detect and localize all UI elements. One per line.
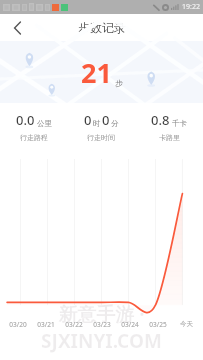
staticText: 03/20 xyxy=(9,320,27,329)
staticText: 03/22 xyxy=(65,320,83,329)
staticText: 0.8 xyxy=(151,111,170,129)
staticText: 新意手游 · SJXINYI.COM xyxy=(0,301,203,354)
staticText: 公里 xyxy=(37,119,52,128)
staticText: 0 xyxy=(102,111,110,129)
staticText: 19:22 xyxy=(182,2,200,12)
staticText: 03/23 xyxy=(93,320,111,329)
button[interactable]: 0 xyxy=(67,111,135,142)
button[interactable]: Back xyxy=(0,14,34,41)
staticText: 步数记录 xyxy=(78,20,126,35)
staticText: 卡路里 xyxy=(159,133,180,142)
staticText: 0.0 xyxy=(16,111,35,129)
button[interactable]: 0.8 xyxy=(135,111,203,142)
staticText: 千卡 xyxy=(172,119,187,128)
button[interactable]: 0.0 xyxy=(0,111,67,142)
staticText: 03/24 xyxy=(121,320,139,329)
staticText: 03/25 xyxy=(149,320,167,329)
staticText: 03/21 xyxy=(37,320,55,329)
staticText: 步 xyxy=(115,78,123,88)
staticText: 行走时间 xyxy=(87,133,115,142)
staticText: 21 xyxy=(81,54,112,91)
staticText: 今天 xyxy=(180,320,193,328)
staticText: 0 xyxy=(84,111,92,129)
staticText: 分 xyxy=(111,119,119,128)
staticText: 时 xyxy=(93,119,101,128)
staticText: 行走路程 xyxy=(20,133,48,142)
